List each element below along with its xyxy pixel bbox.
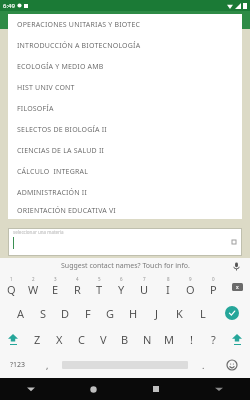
staticText: H <box>129 306 138 321</box>
button[interactable]: B <box>114 326 136 352</box>
staticText: 6 <box>120 276 123 282</box>
button[interactable]: Back <box>0 378 62 400</box>
staticText: 6:49 <box>3 2 15 10</box>
button[interactable]: J <box>145 300 168 326</box>
button[interactable]: 9 <box>179 273 202 300</box>
button[interactable]: ? <box>202 326 224 352</box>
button[interactable]: 0 <box>202 273 225 300</box>
button[interactable]: FILOSOFÍA <box>8 98 242 119</box>
staticText: 4 <box>76 276 79 282</box>
staticText: seleccionar una materia <box>13 229 64 235</box>
staticText: ORIENTACIÓN EDUCATIVA VI <box>17 206 116 216</box>
button[interactable]: , <box>36 352 58 378</box>
staticText: C <box>78 332 85 347</box>
button[interactable]: Z <box>26 326 48 352</box>
staticText: N <box>143 332 152 347</box>
staticText: 8 <box>167 276 170 282</box>
staticText: M <box>164 332 174 347</box>
staticText: P <box>210 282 217 297</box>
button[interactable]: Space <box>58 352 192 378</box>
button[interactable]: Backspace <box>225 273 250 300</box>
button[interactable]: K <box>168 300 191 326</box>
button[interactable]: 5 <box>88 273 110 300</box>
staticText: V <box>100 332 107 347</box>
staticText: . <box>202 359 205 371</box>
button[interactable]: INTRODUCCIÓN A BIOTECNOLOGÍA <box>8 35 242 56</box>
button[interactable]: 4 <box>66 273 88 300</box>
staticText: HIST UNIV CONT <box>17 83 75 93</box>
button[interactable]: D <box>54 300 76 326</box>
staticText: 7 <box>143 276 146 282</box>
staticText: L <box>200 306 206 321</box>
button[interactable]: SELECTOS DE BIOLOGÍA II <box>8 119 242 140</box>
button[interactable]: 2 <box>22 273 44 300</box>
staticText: E <box>52 282 59 297</box>
button[interactable]: G <box>99 300 122 326</box>
button[interactable]: 1 <box>0 273 22 300</box>
button[interactable]: V <box>92 326 114 352</box>
button[interactable]: X <box>48 326 70 352</box>
button[interactable]: Hide keyboard <box>187 378 250 400</box>
staticText: 0 <box>212 276 215 282</box>
button[interactable]: ORIENTACIÓN EDUCATIVA VI <box>8 203 242 219</box>
staticText: ? <box>211 332 216 347</box>
button[interactable]: C <box>70 326 92 352</box>
button[interactable]: Shift <box>224 326 250 352</box>
staticText: INTRODUCCIÓN A BIOTECNOLOGÍA <box>17 41 141 51</box>
staticText: Y <box>118 282 125 297</box>
staticText: 1 <box>10 276 13 282</box>
staticText: S <box>40 306 47 321</box>
staticText: Q <box>7 282 16 297</box>
button[interactable]: Voice input <box>230 260 242 272</box>
button[interactable]: OPERACIONES UNITARIAS Y BIOTEC <box>8 14 242 35</box>
staticText: I <box>166 282 170 297</box>
button[interactable]: A <box>10 300 32 326</box>
staticText: ?123 <box>10 360 26 370</box>
staticText: T <box>96 282 103 297</box>
button[interactable]: 8 <box>156 273 179 300</box>
staticText: K <box>176 306 183 321</box>
staticText: B <box>121 332 129 347</box>
button[interactable]: 7 <box>133 273 156 300</box>
staticText: W <box>28 282 39 297</box>
button[interactable]: Home <box>62 378 124 400</box>
staticText: FILOSOFÍA <box>17 104 54 114</box>
button[interactable]: ADMINISTRACIÓN II <box>8 182 242 203</box>
staticText: 9 <box>189 276 192 282</box>
staticText: 3 <box>54 276 57 282</box>
button[interactable]: H <box>122 300 145 326</box>
button[interactable]: 6 <box>110 273 133 300</box>
staticText: O <box>186 282 195 297</box>
button[interactable]: . <box>192 352 214 378</box>
staticText: 2 <box>32 276 35 282</box>
button[interactable]: Recent apps <box>124 378 187 400</box>
staticText: U <box>140 282 149 297</box>
staticText: F <box>85 306 91 321</box>
button[interactable]: Emoji <box>214 352 250 378</box>
button[interactable]: S <box>32 300 54 326</box>
staticText: SELECTOS DE BIOLOGÍA II <box>17 125 107 135</box>
staticText: 5 <box>98 276 101 282</box>
button[interactable]: N <box>136 326 158 352</box>
button[interactable]: Shift <box>0 326 26 352</box>
staticText: OPERACIONES UNITARIAS Y BIOTEC <box>17 20 141 30</box>
button[interactable]: CÁLCULO INTEGRAL <box>8 161 242 182</box>
button[interactable]: 3 <box>44 273 66 300</box>
staticText: Z <box>34 332 41 347</box>
button[interactable]: F <box>76 300 99 326</box>
staticText: R <box>74 282 81 297</box>
button[interactable]: seleccionar una materia <box>8 228 242 256</box>
button[interactable]: L <box>191 300 214 326</box>
button[interactable]: Enter <box>214 300 250 326</box>
staticText: ECOLOGÍA Y MEDIO AMB <box>17 62 104 72</box>
staticText: x <box>236 284 239 291</box>
button[interactable]: ECOLOGÍA Y MEDIO AMB <box>8 56 242 77</box>
staticText: CÁLCULO INTEGRAL <box>17 167 89 177</box>
button[interactable]: ! <box>180 326 202 352</box>
button[interactable]: CIENCIAS DE LA SALUD II <box>8 140 242 161</box>
staticText: ! <box>190 332 193 347</box>
button[interactable]: HIST UNIV CONT <box>8 77 242 98</box>
button[interactable]: ?123 <box>0 352 36 378</box>
button[interactable]: M <box>158 326 180 352</box>
staticText: J <box>155 306 159 321</box>
